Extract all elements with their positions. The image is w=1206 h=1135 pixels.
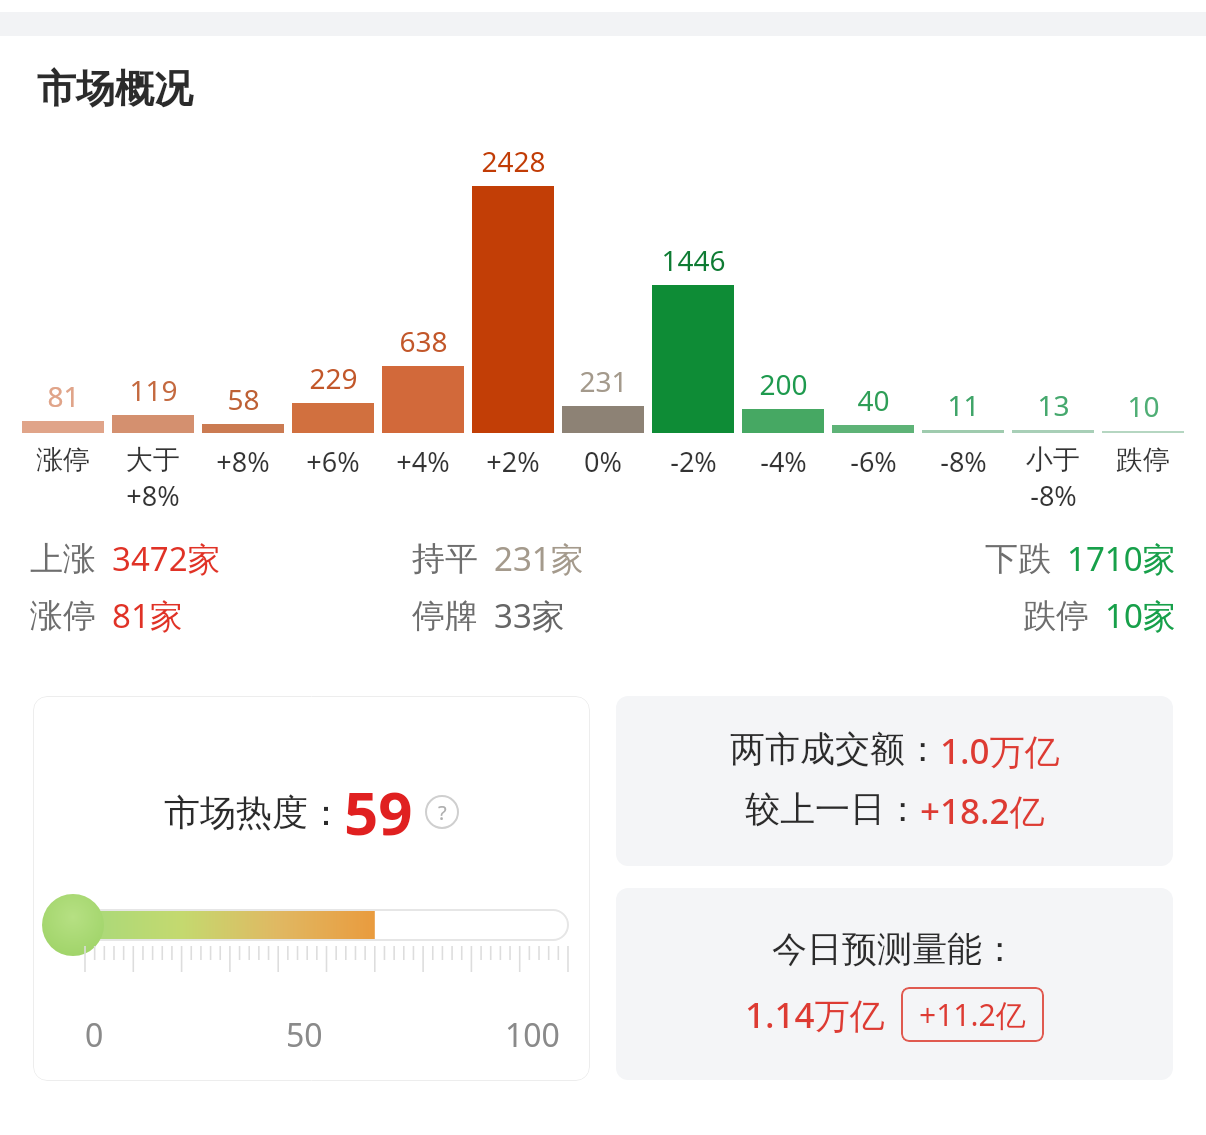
staticText: 10 bbox=[1127, 387, 1160, 425]
staticText: -8% bbox=[940, 443, 987, 480]
staticText: +2% bbox=[486, 443, 540, 480]
staticText: 0% bbox=[584, 443, 622, 480]
staticText: 638 bbox=[399, 322, 448, 360]
staticText: 59 bbox=[344, 771, 413, 853]
staticText: 下跌 bbox=[985, 538, 1051, 580]
staticText: 231 bbox=[579, 362, 628, 400]
button[interactable]: +11.2亿 bbox=[919, 994, 1026, 1035]
staticText: 大于 bbox=[126, 443, 180, 477]
staticText: 1446 bbox=[661, 241, 726, 279]
staticText: 持平 bbox=[412, 538, 478, 580]
staticText: 200 bbox=[759, 365, 808, 403]
staticText: -8% bbox=[1030, 477, 1077, 514]
staticText: -2% bbox=[670, 443, 717, 480]
button[interactable]: 帮助说明 bbox=[425, 795, 459, 829]
staticText: ? bbox=[438, 799, 447, 826]
staticText: 较上一日： bbox=[745, 787, 920, 831]
staticText: 81家 bbox=[112, 593, 183, 638]
staticText: 13 bbox=[1037, 386, 1070, 424]
staticText: 50 bbox=[286, 1013, 323, 1057]
staticText: 1710家 bbox=[1067, 536, 1176, 581]
staticText: 119 bbox=[129, 371, 178, 409]
button[interactable]: 跌停 bbox=[794, 593, 1176, 638]
button[interactable]: 下跌 bbox=[794, 536, 1176, 581]
staticText: +4% bbox=[396, 443, 450, 480]
button[interactable]: 今日预测量能： bbox=[616, 888, 1173, 1080]
button[interactable]: 停牌 bbox=[412, 593, 794, 638]
button[interactable]: 上涨 bbox=[30, 536, 412, 581]
staticText: -4% bbox=[760, 443, 807, 480]
staticText: +6% bbox=[306, 443, 360, 480]
staticText: +8% bbox=[216, 443, 270, 480]
staticText: 1.0万亿 bbox=[940, 727, 1060, 775]
staticText: 小于 bbox=[1026, 443, 1080, 477]
staticText: 涨停 bbox=[30, 595, 96, 637]
staticText: 2428 bbox=[481, 142, 546, 180]
staticText: 10家 bbox=[1105, 593, 1176, 638]
staticText: 市场热度： bbox=[164, 790, 344, 835]
staticText: 1.14万亿 bbox=[745, 991, 885, 1039]
staticText: +18.2亿 bbox=[920, 787, 1045, 835]
button[interactable]: 涨停 bbox=[30, 593, 412, 638]
staticText: +11.2亿 bbox=[919, 994, 1026, 1035]
staticText: 上涨 bbox=[30, 538, 96, 580]
staticText: 58 bbox=[227, 380, 260, 418]
staticText: 0 bbox=[85, 1013, 104, 1057]
staticText: +8% bbox=[126, 477, 180, 514]
staticText: 跌停 bbox=[1116, 443, 1170, 477]
staticText: 40 bbox=[857, 381, 890, 419]
staticText: 今日预测量能： bbox=[772, 927, 1017, 971]
staticText: 涨停 bbox=[36, 443, 90, 477]
staticText: 100 bbox=[505, 1013, 560, 1057]
staticText: 市场概况 bbox=[37, 64, 193, 113]
button[interactable]: 两市成交额： bbox=[616, 696, 1173, 866]
staticText: -6% bbox=[850, 443, 897, 480]
staticText: 3472家 bbox=[112, 536, 221, 581]
button[interactable]: 持平 bbox=[412, 536, 794, 581]
staticText: 33家 bbox=[494, 593, 565, 638]
staticText: 229 bbox=[309, 359, 358, 397]
staticText: 两市成交额： bbox=[730, 727, 940, 771]
staticText: 81 bbox=[47, 377, 80, 415]
staticText: 跌停 bbox=[1023, 595, 1089, 637]
staticText: 停牌 bbox=[412, 595, 478, 637]
button[interactable]: 市场热度： bbox=[33, 696, 590, 1081]
staticText: 231家 bbox=[494, 536, 584, 581]
staticText: 11 bbox=[947, 386, 980, 424]
